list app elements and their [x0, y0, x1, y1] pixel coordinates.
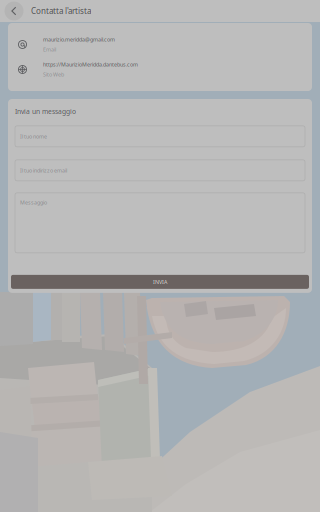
staticText: Sito Web [43, 71, 64, 78]
staticText: maurizio.meridda@gmail.com [43, 36, 115, 43]
button[interactable]: Back [3, 0, 25, 21]
staticText: INVIA [153, 278, 167, 285]
staticText: Email [43, 46, 56, 53]
staticText: Contatta l'artista [31, 6, 91, 16]
staticText: Il tuo indirizzo email [20, 167, 67, 174]
staticText: https://MaurizioMeridda.dantebus.com [43, 61, 138, 68]
staticText: Invia un messaggio [15, 107, 76, 116]
button[interactable]: https://MaurizioMeridda.dantebus.com [8, 57, 312, 82]
staticText: Il tuo nome [20, 133, 47, 140]
button[interactable]: INVIA [11, 275, 309, 289]
button[interactable]: maurizio.meridda@gmail.com [8, 32, 312, 57]
staticText: Messaggio [20, 199, 47, 206]
